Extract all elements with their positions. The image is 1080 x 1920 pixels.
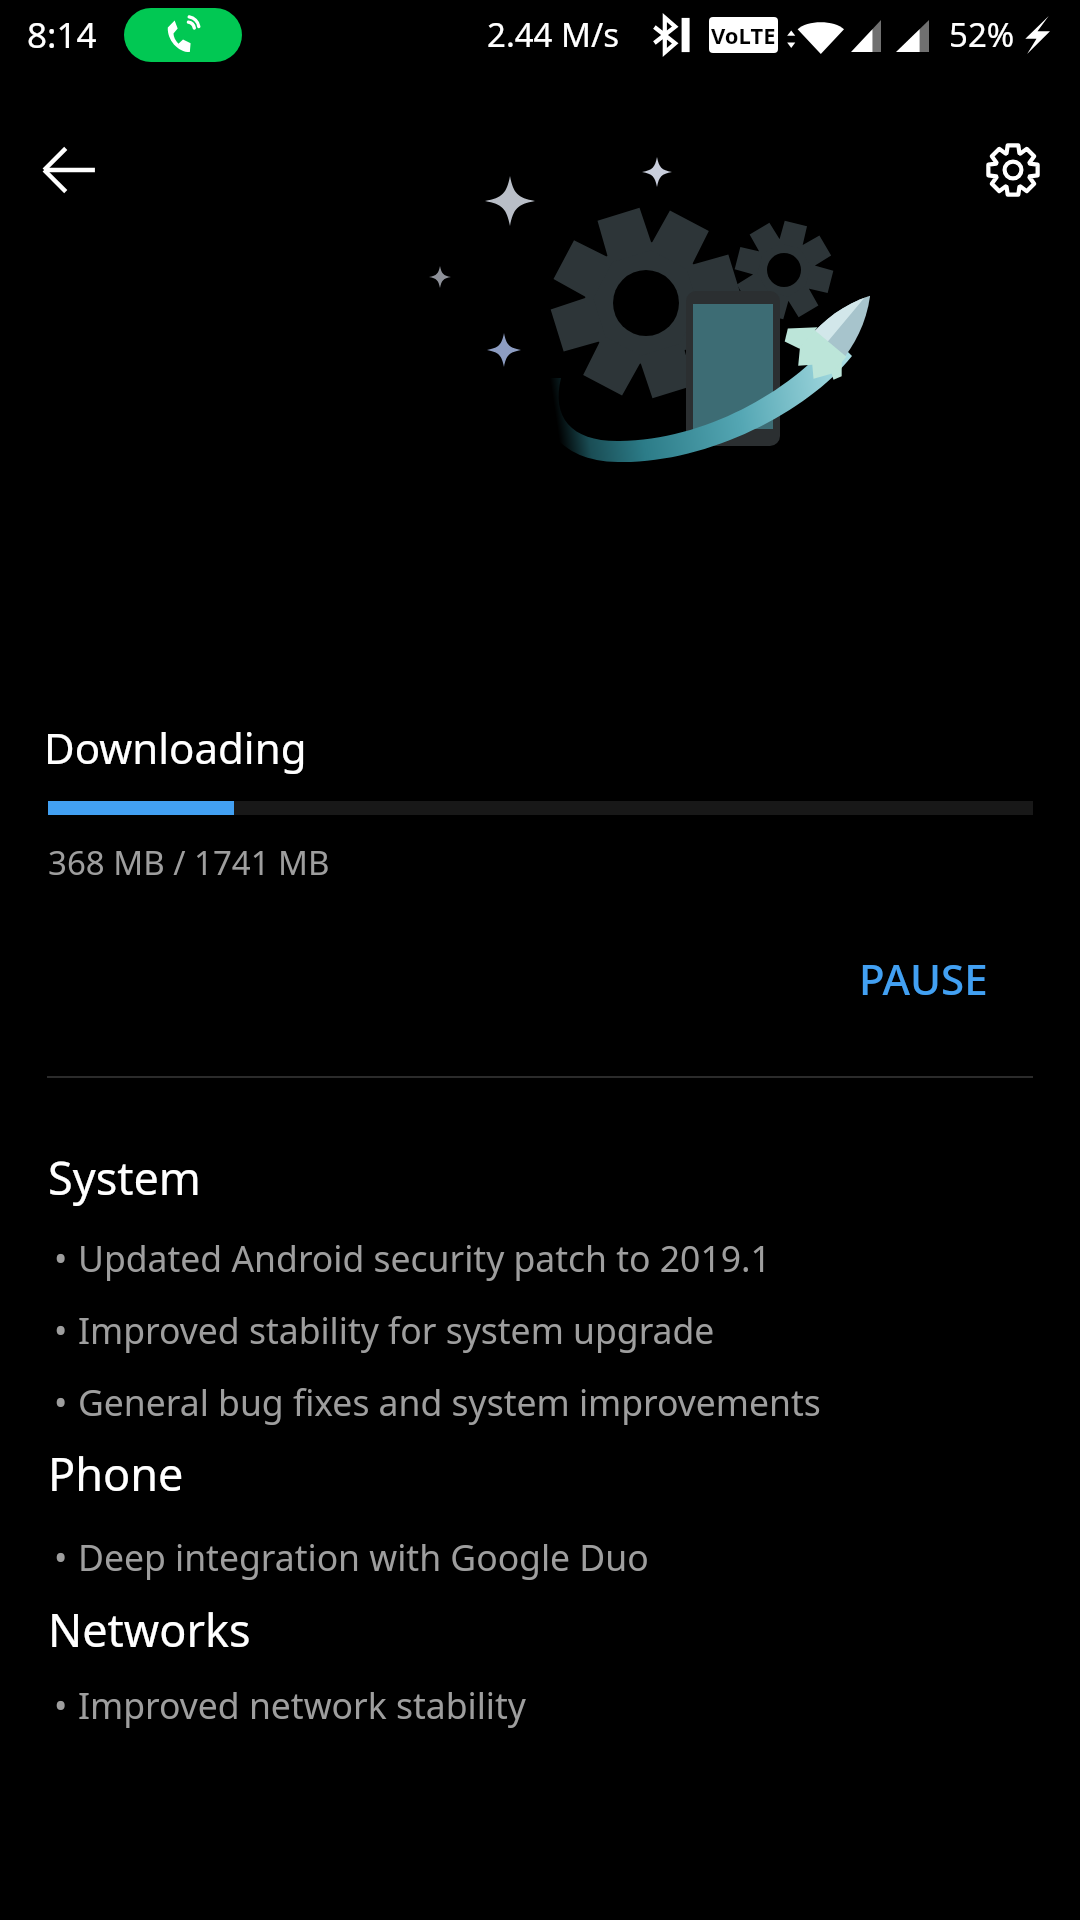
staticText: Updated Android security patch to 2019.1 [78, 1234, 771, 1282]
staticText: PAUSE [859, 950, 988, 1007]
button[interactable]: Ongoing call [124, 8, 242, 62]
staticText: Phone [48, 1443, 184, 1504]
staticText: VoLTE [711, 20, 776, 50]
button[interactable]: Back [26, 127, 112, 213]
staticText: • [54, 1378, 68, 1426]
staticText: Deep integration with Google Duo [78, 1533, 649, 1581]
staticText: • [54, 1306, 68, 1354]
staticText: 2.44 M/s [487, 12, 620, 57]
staticText: • [54, 1533, 68, 1581]
button[interactable]: Settings [970, 127, 1056, 213]
staticText: Networks [48, 1599, 251, 1660]
staticText: Improved network stability [78, 1681, 526, 1729]
staticText: Downloading [44, 719, 307, 776]
staticText: 52% [949, 12, 1015, 57]
button[interactable]: PAUSE [833, 934, 1014, 1023]
staticText: 368 MB / 1741 MB [48, 840, 330, 885]
staticText: • [54, 1234, 68, 1282]
staticText: • [54, 1681, 68, 1729]
staticText: System [48, 1147, 201, 1208]
staticText: General bug fixes and system improvement… [78, 1378, 821, 1426]
staticText: 8:14 [27, 11, 97, 59]
staticText: Improved stability for system upgrade [78, 1306, 715, 1354]
